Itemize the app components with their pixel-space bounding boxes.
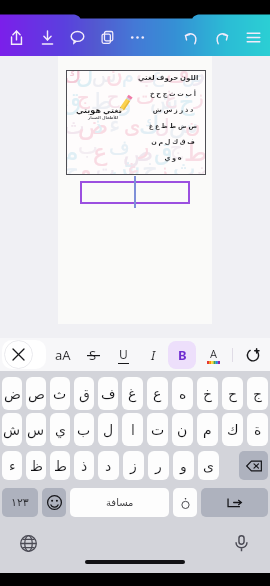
staticText: ت: [136, 85, 155, 108]
staticText: ه: [179, 386, 187, 402]
staticText: ف: [166, 70, 190, 88]
staticText: ط: [91, 88, 113, 115]
button[interactable]: Menu: [236, 18, 270, 56]
staticText: ع: [153, 386, 162, 402]
staticText: ر: [155, 458, 162, 474]
button[interactable]: ج: [247, 377, 268, 410]
button[interactable]: ى: [198, 451, 219, 480]
staticText: ر: [139, 135, 150, 159]
button[interactable]: Strikethrough: [78, 341, 108, 369]
staticText: س: [27, 422, 45, 438]
button[interactable]: [80, 181, 190, 204]
staticText: ك: [227, 422, 239, 438]
button[interactable]: Change keyboard language: [14, 529, 42, 557]
button[interactable]: ل: [98, 413, 118, 446]
staticText: ن: [106, 70, 123, 88]
button[interactable]: Redo: [206, 18, 236, 56]
button[interactable]: ح: [222, 377, 243, 410]
staticText: ف: [101, 386, 116, 402]
button[interactable]: ا: [122, 413, 143, 446]
button[interactable]: م: [197, 413, 218, 446]
staticText: ة: [254, 422, 262, 438]
button[interactable]: ش: [2, 413, 22, 446]
button[interactable]: مسافة: [70, 488, 169, 517]
button[interactable]: Download: [32, 18, 62, 56]
staticText: أ ب ت ث ج ح خ: [145, 89, 201, 98]
staticText: ا: [131, 422, 135, 438]
button[interactable]: Share: [0, 18, 32, 56]
staticText: و: [180, 458, 187, 474]
staticText: د ذ ر ز س ش: [145, 105, 201, 114]
button[interactable]: Close formatting: [2, 340, 46, 369]
staticText: ك: [139, 111, 160, 140]
button[interactable]: ء: [2, 451, 22, 480]
button[interactable]: I: [138, 341, 168, 369]
staticText: ق: [66, 88, 82, 116]
staticText: س: [92, 70, 117, 86]
staticText: A: [210, 346, 218, 361]
staticText: ذ: [81, 458, 88, 474]
staticText: ج: [170, 135, 183, 158]
button[interactable]: ب: [74, 413, 94, 446]
staticText: ص: [182, 70, 205, 86]
button[interactable]: ه: [172, 377, 193, 410]
button[interactable]: Backspace: [239, 451, 268, 480]
button[interactable]: ث: [50, 377, 70, 410]
staticText: م: [122, 70, 134, 86]
staticText: غ: [127, 158, 140, 175]
staticText: ح: [228, 386, 238, 402]
button[interactable]: Underline: [108, 341, 138, 369]
staticText: خ: [179, 88, 195, 116]
staticText: ث: [173, 155, 196, 175]
staticText: لغتي هويتي: [76, 104, 122, 115]
button[interactable]: Duplicate: [92, 18, 122, 56]
staticText: ش: [111, 155, 141, 175]
button[interactable]: Text colour: [199, 341, 227, 369]
button[interactable]: Comment: [62, 18, 92, 56]
button[interactable]: خ: [197, 377, 218, 410]
button[interactable]: ص: [26, 377, 46, 410]
button[interactable]: ة: [247, 413, 268, 446]
button[interactable]: س: [26, 413, 46, 446]
button[interactable]: More options: [122, 18, 152, 56]
button[interactable]: Emoji: [42, 488, 66, 517]
staticText: ف ق ك ل م ن: [145, 137, 201, 146]
staticText: ص: [28, 386, 45, 402]
button[interactable]: Enter: [201, 488, 268, 517]
button[interactable]: ع: [147, 377, 168, 410]
button[interactable]: و: [173, 451, 194, 480]
staticText: ذ: [94, 114, 103, 137]
button[interactable]: ذ: [74, 451, 94, 480]
staticText: aA: [55, 346, 71, 364]
button[interactable]: ق: [74, 377, 94, 410]
button[interactable]: Diacritics: [173, 488, 197, 517]
button[interactable]: Undo: [176, 18, 206, 56]
button[interactable]: ظ: [26, 451, 46, 480]
staticText: خ: [203, 386, 213, 402]
button[interactable]: غ: [122, 377, 143, 410]
button[interactable]: ي: [50, 413, 70, 446]
button[interactable]: ف: [98, 377, 118, 410]
staticText: ء: [9, 458, 16, 474]
button[interactable]: B: [168, 341, 196, 369]
button[interactable]: Redo formatting: [239, 341, 267, 369]
staticText: للأطفال الصغار: [88, 115, 119, 120]
button[interactable]: ط: [50, 451, 70, 480]
staticText: و: [80, 155, 93, 175]
staticText: ى: [124, 114, 141, 138]
button[interactable]: ن: [172, 413, 193, 446]
staticText: ن: [177, 422, 188, 438]
button[interactable]: ك: [222, 413, 243, 446]
staticText: ى: [203, 458, 214, 474]
staticText: ج: [77, 85, 90, 108]
button[interactable]: د: [98, 451, 119, 480]
staticText: ث: [66, 114, 85, 140]
button[interactable]: ت: [147, 413, 168, 446]
button[interactable]: aA: [48, 341, 78, 369]
button[interactable]: ض: [2, 377, 22, 410]
button[interactable]: Voice input: [227, 529, 255, 557]
staticText: I: [151, 346, 156, 364]
button[interactable]: ر: [148, 451, 169, 480]
button[interactable]: Numbers: [2, 488, 38, 517]
button[interactable]: ز: [123, 451, 144, 480]
